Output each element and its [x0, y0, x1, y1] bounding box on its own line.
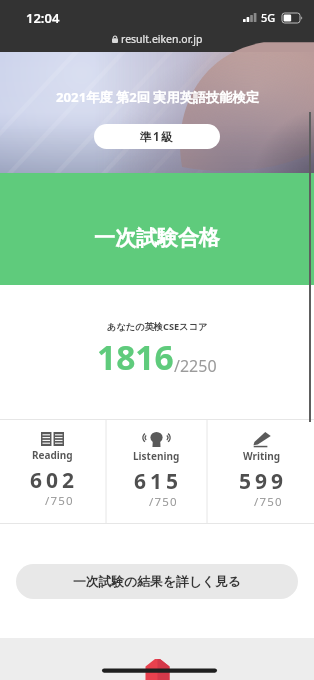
staticText: /750	[45, 493, 74, 509]
button[interactable]: Writing	[209, 419, 314, 524]
staticText: 615	[134, 467, 183, 496]
staticText: 599	[239, 467, 288, 496]
button[interactable]: 一次試験の結果を詳しく見る	[16, 564, 298, 599]
button[interactable]: Listening	[104, 419, 209, 524]
staticText: /750	[254, 494, 283, 510]
staticText: Writing	[243, 449, 281, 463]
staticText: Listening	[133, 449, 180, 463]
staticText: 一次試験合格	[94, 225, 220, 251]
staticText: 602	[30, 466, 79, 495]
staticText: result.eiken.or.jp	[121, 32, 203, 46]
staticText: あなたの英検CSEスコア	[107, 320, 208, 333]
staticText: /750	[149, 494, 178, 510]
staticText: Reading	[32, 448, 73, 462]
staticText: 1816	[97, 334, 174, 380]
staticText: 一次試験の結果を詳しく見る	[73, 574, 241, 590]
staticText: 準1級	[140, 129, 175, 145]
staticText: 2021年度 第2回 実用英語技能検定	[56, 88, 259, 106]
button[interactable]: Reading	[0, 419, 104, 524]
staticText: 5G	[261, 10, 276, 25]
staticText: 12:04	[26, 9, 60, 27]
staticText: /2250	[174, 355, 217, 377]
button[interactable]: 準1級	[94, 124, 220, 149]
